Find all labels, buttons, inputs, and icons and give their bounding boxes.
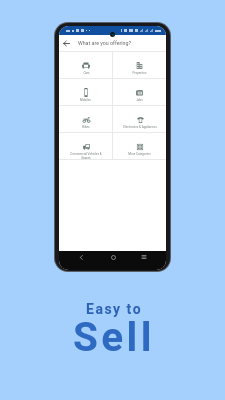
staticText: Jobs bbox=[136, 98, 143, 102]
button[interactable]: Back bbox=[59, 35, 73, 51]
button[interactable]: Electronics & Appliances bbox=[113, 106, 166, 132]
button[interactable]: Home bbox=[103, 251, 123, 263]
staticText: Properties bbox=[132, 71, 147, 75]
button[interactable]: More Categories bbox=[113, 133, 166, 159]
staticText: Commercial Vehicles & Spares bbox=[70, 152, 102, 160]
button[interactable]: Cars bbox=[59, 52, 112, 78]
button[interactable]: Commercial Vehicles & Spares bbox=[59, 133, 112, 159]
staticText: More Categories bbox=[128, 152, 151, 156]
staticText: Sell bbox=[73, 313, 155, 360]
button[interactable]: Properties bbox=[113, 52, 166, 78]
staticText: Cars bbox=[83, 71, 90, 75]
button[interactable]: Recent apps bbox=[134, 251, 154, 263]
staticText: What are you offering? bbox=[78, 40, 131, 46]
button[interactable]: Mobiles bbox=[59, 79, 112, 105]
staticText: Electronics & Appliances bbox=[123, 125, 157, 129]
button[interactable]: Back bbox=[71, 251, 91, 263]
button[interactable]: Jobs bbox=[113, 79, 166, 105]
staticText: Mobiles bbox=[80, 98, 91, 102]
button[interactable]: Bikes bbox=[59, 106, 112, 132]
staticText: Bikes bbox=[82, 125, 90, 129]
staticText: Easy to bbox=[86, 301, 143, 317]
